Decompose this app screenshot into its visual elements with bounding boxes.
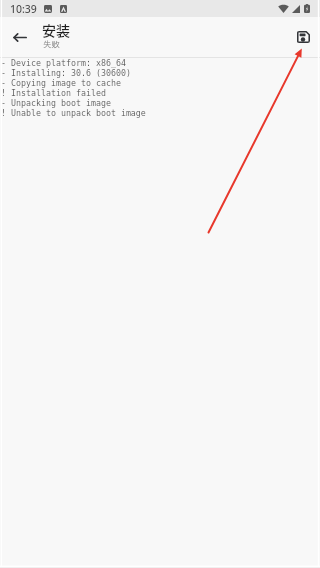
button[interactable]: Save <box>287 21 319 53</box>
staticText: - Device platform: x86_64 - Installing: … <box>1 58 146 118</box>
staticText: 安装 <box>42 20 70 40</box>
staticText: 失败 <box>43 39 60 49</box>
button[interactable]: Back <box>4 21 36 53</box>
staticText: 10:39 <box>10 2 37 16</box>
